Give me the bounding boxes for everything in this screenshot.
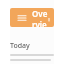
button[interactable]: Navigation menu (15, 11, 28, 24)
button[interactable]: Today (10, 41, 54, 64)
button[interactable]: Navigation menu (10, 8, 54, 27)
staticText: Today (10, 41, 30, 51)
staticText: Overview (32, 8, 49, 27)
